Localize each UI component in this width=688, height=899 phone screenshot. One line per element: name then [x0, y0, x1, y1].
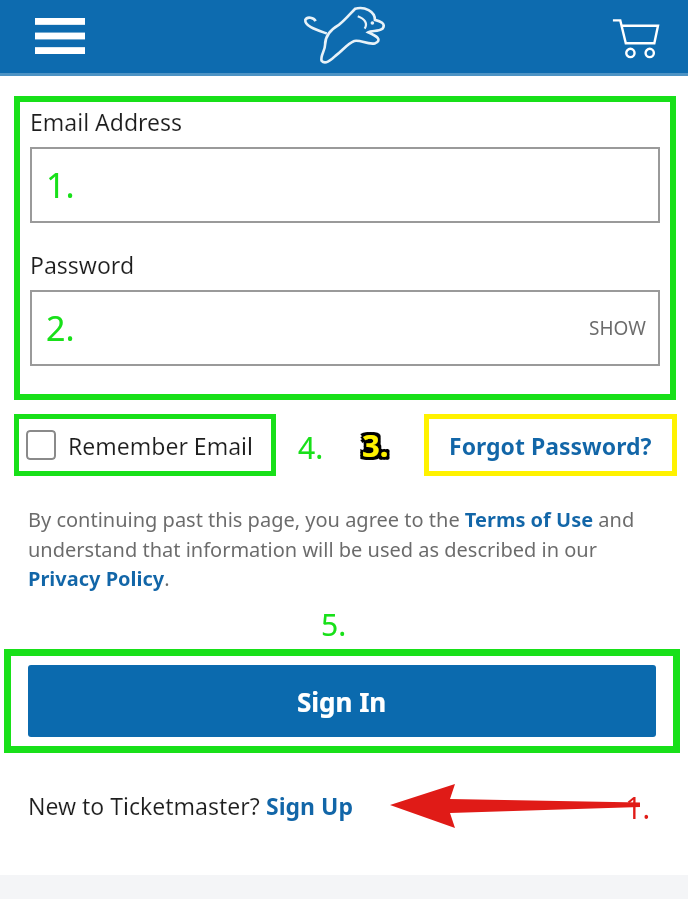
staticText: By continuing past this page, you agree …	[28, 506, 660, 592]
staticText: 3.	[365, 424, 392, 466]
button[interactable]: 2.	[30, 290, 660, 366]
button[interactable]: SHOW	[589, 315, 646, 341]
button[interactable]: Forgot Password?	[449, 430, 652, 461]
staticText: 4.	[298, 427, 324, 468]
staticText: 3.	[359, 424, 386, 466]
staticText: Sign Up	[266, 790, 353, 821]
staticText: New to Ticketmaster?	[28, 790, 266, 821]
staticText: Forgot Password?	[449, 430, 652, 461]
staticText: 1.	[46, 162, 75, 208]
button[interactable]: Menu	[28, 10, 92, 62]
button[interactable]: Sign Up	[266, 790, 353, 821]
staticText: 3.	[359, 421, 386, 463]
staticText: 1.	[625, 787, 651, 828]
button[interactable]: Sign In	[28, 665, 656, 737]
button[interactable]: 1.	[30, 147, 660, 223]
staticText: Remember Email	[68, 430, 253, 461]
staticText: 2.	[46, 305, 75, 351]
staticText: Email Address	[30, 106, 183, 137]
staticText: SHOW	[589, 315, 646, 341]
button[interactable]: Remember Email	[26, 414, 276, 476]
staticText: 3.	[359, 427, 386, 469]
staticText: Password	[30, 249, 135, 280]
staticText: 3.	[362, 427, 389, 469]
staticText: 3.	[362, 421, 389, 463]
staticText: 3.	[362, 424, 389, 466]
staticText: 3.	[365, 427, 392, 469]
button[interactable]: Cart	[604, 9, 666, 67]
staticText: Sign In	[297, 684, 387, 719]
staticText: 3.	[365, 421, 392, 463]
staticText: 5.	[321, 604, 347, 645]
